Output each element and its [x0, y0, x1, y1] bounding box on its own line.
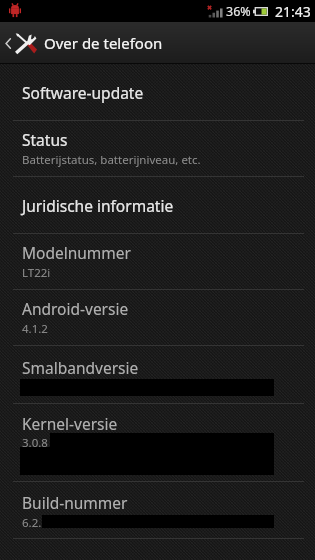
- button[interactable]: Back: [0, 22, 315, 63]
- button[interactable]: Android-versie: [0, 290, 315, 345]
- staticText: Kernel-versie: [22, 413, 118, 434]
- staticText: Smalbandversie: [22, 357, 139, 378]
- other: Back: [4, 36, 12, 51]
- button[interactable]: Software-update: [0, 64, 315, 120]
- button[interactable]: Build-nummer: [0, 482, 315, 538]
- staticText: Build-nummer: [22, 492, 128, 513]
- button[interactable]: Juridische informatie: [0, 177, 315, 233]
- staticText: Android-versie: [22, 298, 129, 319]
- staticText: Batterijstatus, batterijniveau, etc.: [22, 152, 201, 168]
- staticText: 6.2.: [22, 515, 42, 531]
- staticText: 21:43: [275, 2, 311, 21]
- staticText: Status: [22, 129, 68, 150]
- staticText: Modelnummer: [22, 242, 131, 263]
- button[interactable]: Kernel-versie: [0, 404, 315, 481]
- staticText: 4.1.2: [22, 321, 48, 337]
- staticText: Juridische informatie: [22, 195, 174, 216]
- staticText: 3.0.8: [22, 435, 48, 451]
- button[interactable]: Status: [0, 121, 315, 176]
- staticText: LT22i: [22, 265, 51, 281]
- staticText: 36%: [226, 3, 251, 20]
- button[interactable]: Smalbandversie: [0, 346, 315, 403]
- staticText: Software-update: [22, 82, 144, 103]
- button[interactable]: Modelnummer: [0, 234, 315, 289]
- staticText: Over de telefoon: [44, 33, 163, 53]
